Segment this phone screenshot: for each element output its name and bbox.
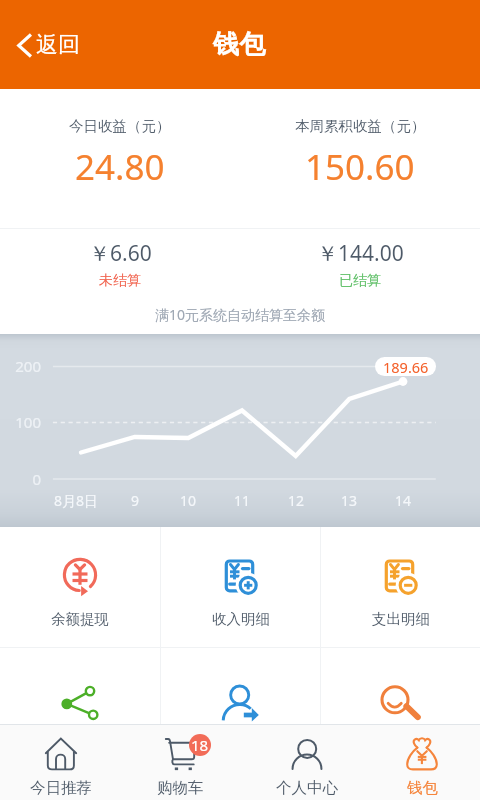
staticText: 分享好友: [51, 736, 109, 754]
staticText: 24.80: [75, 143, 165, 191]
staticText: ￥6.60: [89, 239, 152, 268]
staticText: 今日推荐: [30, 778, 92, 798]
staticText: 11: [202, 491, 282, 510]
button[interactable]: 返回: [12, 25, 84, 65]
button[interactable]: 个人中心: [240, 725, 360, 798]
button[interactable]: 邀请好友: [161, 648, 320, 754]
staticText: 189.66: [383, 357, 429, 376]
staticText: 搜索订单: [372, 736, 430, 754]
staticText: 今日收益（元）: [69, 117, 171, 135]
button[interactable]: ￥6.60: [0, 229, 240, 290]
staticText: 12: [256, 491, 336, 510]
staticText: 支出明细: [372, 610, 430, 628]
staticText: 150.60: [305, 143, 415, 191]
staticText: 18: [191, 735, 209, 755]
button[interactable]: 今日收益（元）: [0, 89, 240, 191]
button[interactable]: ￥144.00: [240, 229, 480, 290]
button[interactable]: 钱包: [360, 725, 480, 798]
staticText: 14: [363, 491, 443, 510]
button[interactable]: 余额提现: [0, 527, 160, 628]
staticText: 13: [309, 491, 389, 510]
staticText: 钱包: [407, 778, 438, 798]
staticText: 钱包: [213, 28, 265, 61]
staticText: 返回: [36, 31, 80, 59]
button[interactable]: 本周累积收益（元）: [240, 89, 480, 191]
staticText: 购物车: [157, 778, 204, 798]
button[interactable]: 分享好友: [0, 648, 160, 754]
button[interactable]: 18: [120, 725, 240, 798]
button[interactable]: 今日推荐: [0, 725, 120, 798]
staticText: 100: [0, 412, 41, 432]
staticText: 200: [0, 356, 41, 376]
staticText: 本周累积收益（元）: [295, 117, 426, 135]
button[interactable]: 支出明细: [321, 527, 480, 628]
staticText: 已结算: [339, 272, 381, 290]
staticText: 收入明细: [212, 610, 270, 628]
staticText: 个人中心: [276, 778, 338, 798]
staticText: 9: [95, 491, 175, 510]
staticText: 10: [148, 491, 228, 510]
button[interactable]: 收入明细: [161, 527, 320, 628]
staticText: ￥144.00: [317, 239, 404, 268]
staticText: 余额提现: [51, 610, 109, 628]
staticText: 满10元系统自动结算至余额: [0, 305, 480, 324]
staticText: 未结算: [99, 272, 141, 290]
staticText: 0: [0, 469, 41, 489]
button[interactable]: 搜索订单: [321, 648, 480, 754]
staticText: 8月8日: [36, 491, 116, 510]
